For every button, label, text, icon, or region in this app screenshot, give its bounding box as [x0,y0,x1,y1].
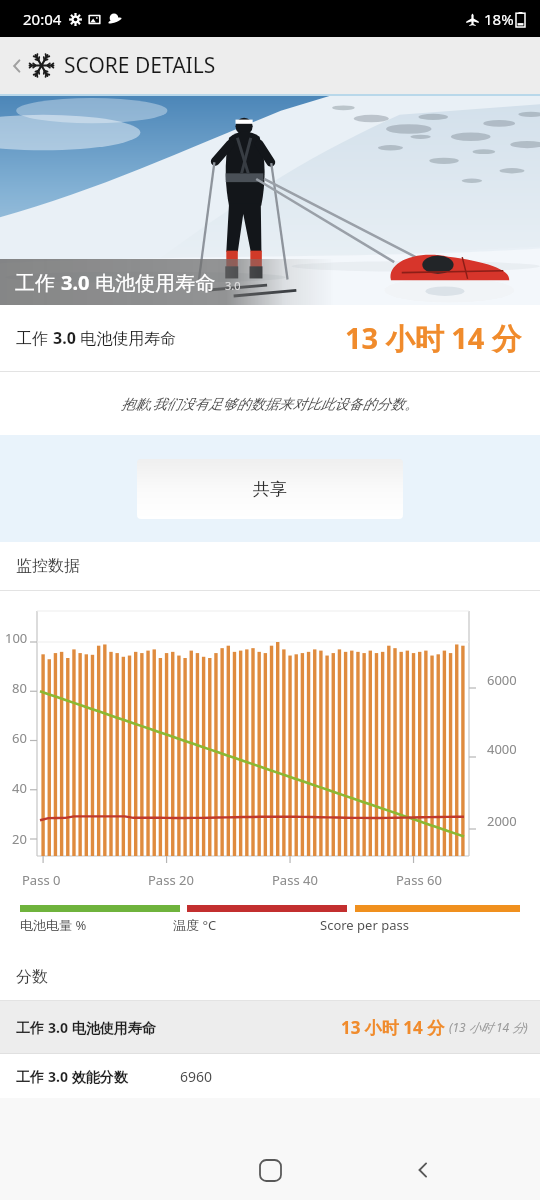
staticText: 20 [12,830,27,848]
button[interactable]: 工作 [0,305,540,371]
staticText: Pass 0 [22,871,61,889]
button[interactable]: Back [0,37,540,94]
staticText: (13 小时 14 分) [449,1019,528,1035]
staticText: Score per pass [320,916,409,934]
staticText: 20:04 [23,9,62,29]
staticText: 3.0 [225,278,241,293]
staticText: 分数 [16,967,48,987]
staticText: 60 [12,729,27,747]
staticText: 4000 [487,740,517,758]
staticText: 6960 [180,1067,213,1086]
staticText: 电池使用寿命 [90,269,216,296]
staticText: 效能分数 [68,1067,128,1086]
staticText: 3.0 [48,1067,68,1086]
staticText: 100 [5,629,28,647]
staticText: 电池使用寿命 [68,1018,156,1037]
staticText: 13 小时 14 分 [345,318,521,358]
staticText: Pass 20 [148,871,194,889]
staticText: 6000 [487,671,517,689]
staticText: 电池电量 % [20,916,87,934]
staticText: 共享 [253,479,287,500]
staticText: 2000 [487,812,517,830]
staticText: 40 [12,779,27,797]
button[interactable]: 共享 [137,459,403,519]
button[interactable]: 分数 [0,953,540,1000]
button[interactable]: 工作 [0,1001,540,1053]
button[interactable]: 工作 [0,96,540,305]
staticText: Pass 60 [396,871,442,889]
staticText: 工作 [16,327,53,349]
staticText: 工作 [16,1067,48,1086]
staticText: 温度 °C [173,916,217,934]
staticText: 3.0 [48,1018,68,1037]
staticText: 工作 [16,1018,48,1037]
staticText: 80 [12,679,27,697]
staticText: Pass 40 [272,871,318,889]
staticText: 3.0 [61,269,90,296]
staticText: SCORE DETAILS [64,51,216,80]
staticText: 抱歉,我们没有足够的数据来对比此设备的分数。 [121,394,419,413]
staticText: 13 小时 14 分 [341,1016,445,1039]
button[interactable]: Back [400,1147,446,1193]
staticText: 3.0 [53,327,76,349]
button[interactable]: 监控数据 [0,542,540,590]
staticText: 监控数据 [16,556,80,576]
staticText: 18% [484,9,514,29]
staticText: 电池使用寿命 [76,327,177,349]
staticText: 工作 [15,269,61,296]
button[interactable]: 抱歉,我们没有足够的数据来对比此设备的分数。 [0,372,540,435]
button[interactable]: Home [247,1147,293,1193]
other: Back [7,56,27,76]
button[interactable]: 工作 [0,1054,540,1098]
